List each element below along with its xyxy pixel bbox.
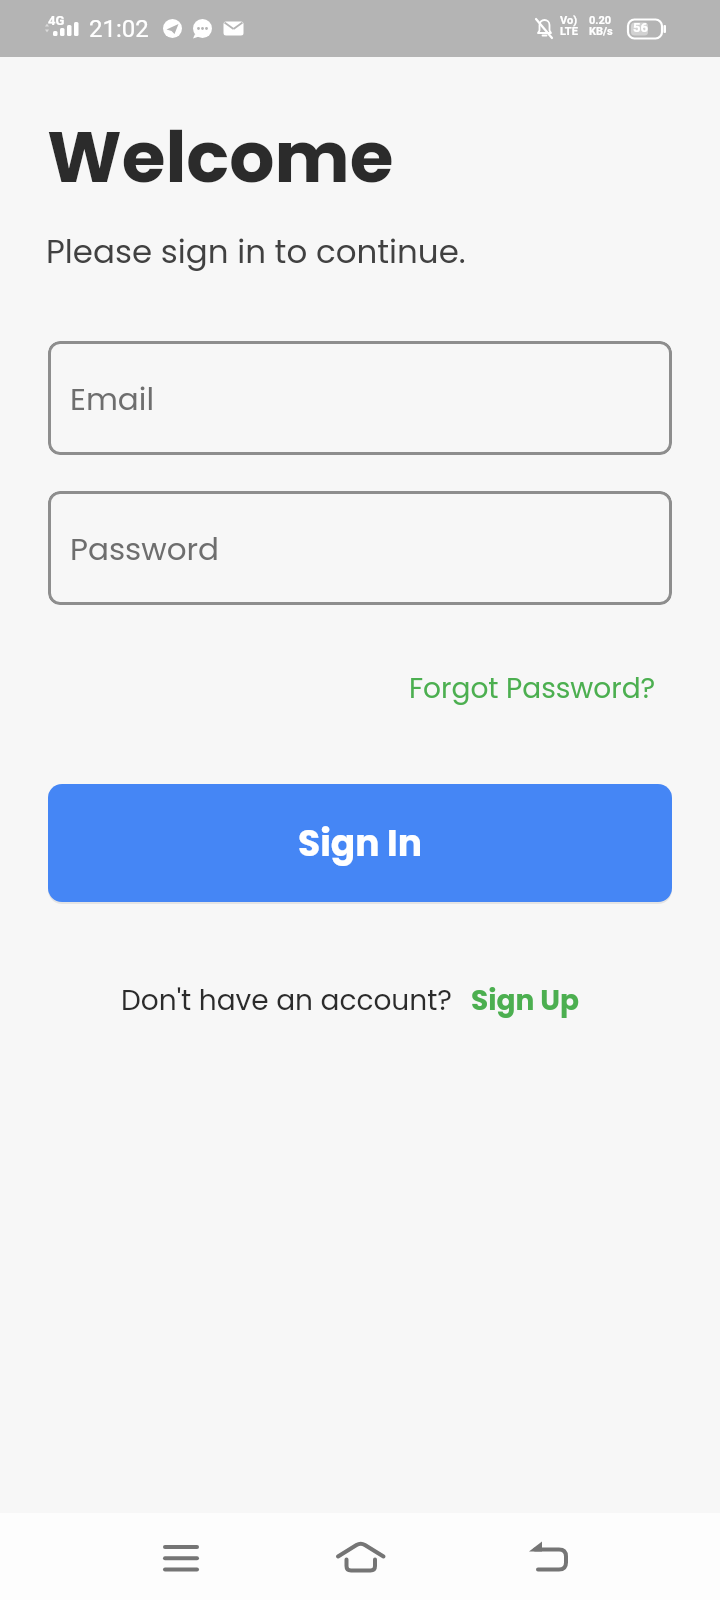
- button[interactable]: Email: [48, 341, 672, 455]
- staticText: Welcome: [47, 107, 394, 206]
- button[interactable]: Forgot Password?: [409, 669, 656, 708]
- button[interactable]: Password: [48, 491, 672, 605]
- button[interactable]: Sign Up: [471, 981, 580, 1020]
- button[interactable]: [240, 1513, 480, 1600]
- staticText: 21:02: [89, 15, 149, 43]
- staticText: Please sign in to continue.: [46, 229, 466, 275]
- staticText: Forgot Password?: [409, 669, 656, 708]
- staticText: Sign In: [298, 818, 422, 868]
- staticText: Vo): [560, 14, 578, 27]
- staticText: Password: [70, 527, 220, 570]
- staticText: 56: [633, 20, 648, 35]
- staticText: LTE: [560, 25, 578, 38]
- staticText: KB/s: [589, 25, 613, 38]
- button[interactable]: [0, 1513, 240, 1600]
- button[interactable]: Sign In: [48, 784, 672, 902]
- staticText: Email: [70, 377, 155, 420]
- staticText: 4G: [48, 13, 65, 28]
- staticText: Sign Up: [471, 981, 580, 1020]
- staticText: Don't have an account?: [121, 981, 453, 1020]
- button[interactable]: [480, 1513, 720, 1600]
- staticText: 0.20: [589, 14, 612, 27]
